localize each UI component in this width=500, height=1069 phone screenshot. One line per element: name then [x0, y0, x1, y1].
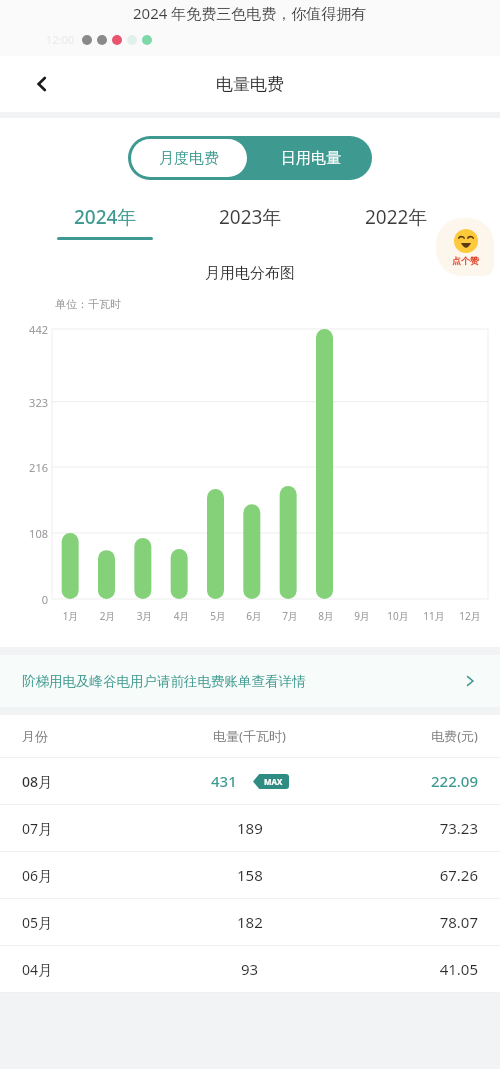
staticText: 431	[211, 771, 237, 791]
button[interactable]: 月度电费	[131, 139, 247, 177]
staticText: 日用电量	[281, 149, 341, 168]
staticText: 12:00	[46, 32, 75, 47]
button[interactable]: 06月	[0, 852, 500, 898]
staticText: 06月	[22, 866, 164, 885]
staticText: 8月	[308, 609, 344, 623]
staticText: 1月	[52, 609, 89, 623]
staticText: 月份	[22, 728, 164, 744]
staticText: 04月	[22, 960, 164, 979]
staticText: 10月	[380, 609, 416, 623]
staticText: 点个赞	[452, 255, 479, 266]
staticText: 2024年	[74, 204, 137, 230]
button[interactable]: Back	[22, 64, 62, 104]
staticText: 阶梯用电及峰谷电用户请前往电费账单查看详情	[22, 673, 462, 690]
staticText: 108	[14, 526, 48, 541]
staticText: 67.26	[335, 865, 478, 885]
staticText: 电费(元)	[335, 727, 478, 745]
staticText: 9月	[344, 609, 380, 623]
button[interactable]: 2023年	[195, 202, 305, 242]
staticText: 41.05	[335, 959, 478, 979]
button[interactable]: 2024年	[50, 202, 160, 242]
staticText: 182	[237, 912, 263, 932]
staticText: 月用电分布图	[0, 264, 500, 283]
staticText: 2023年	[219, 204, 282, 230]
staticText: 78.07	[335, 912, 478, 932]
staticText: 3月	[126, 609, 163, 623]
staticText: 442	[14, 322, 48, 337]
button[interactable]: 05月	[0, 899, 500, 945]
staticText: 单位：千瓦时	[55, 297, 121, 311]
staticText: 5月	[200, 609, 236, 623]
staticText: 11月	[416, 609, 452, 623]
staticText: 07月	[22, 819, 164, 838]
staticText: 2月	[89, 609, 126, 623]
staticText: 08月	[22, 772, 164, 791]
button[interactable]: 08月	[0, 758, 500, 804]
button[interactable]: 日用电量	[250, 136, 372, 180]
staticText: 189	[237, 818, 263, 838]
button[interactable]: 点个赞	[436, 218, 494, 276]
staticText: 4月	[163, 609, 200, 623]
button[interactable]: 04月	[0, 946, 500, 992]
staticText: 93	[241, 959, 259, 979]
staticText: 158	[237, 865, 263, 885]
staticText: 月度电费	[159, 149, 219, 168]
staticText: 7月	[272, 609, 308, 623]
staticText: MAX	[264, 776, 283, 787]
button[interactable]: 07月	[0, 805, 500, 851]
staticText: 电量(千瓦时)	[164, 727, 335, 745]
button[interactable]: 阶梯用电及峰谷电用户请前往电费账单查看详情	[0, 655, 500, 707]
staticText: 0	[14, 592, 48, 607]
staticText: 222.09	[335, 771, 478, 791]
staticText: 2022年	[365, 204, 428, 230]
staticText: 12月	[452, 609, 488, 623]
staticText: 6月	[236, 609, 272, 623]
button[interactable]: 2022年	[341, 202, 451, 242]
staticText: 323	[14, 395, 48, 410]
staticText: 216	[14, 460, 48, 475]
staticText: 73.23	[335, 818, 478, 838]
staticText: 05月	[22, 913, 164, 932]
staticText: 2024 年免费三色电费，你值得拥有	[133, 3, 367, 23]
staticText: 电量电费	[216, 74, 284, 95]
